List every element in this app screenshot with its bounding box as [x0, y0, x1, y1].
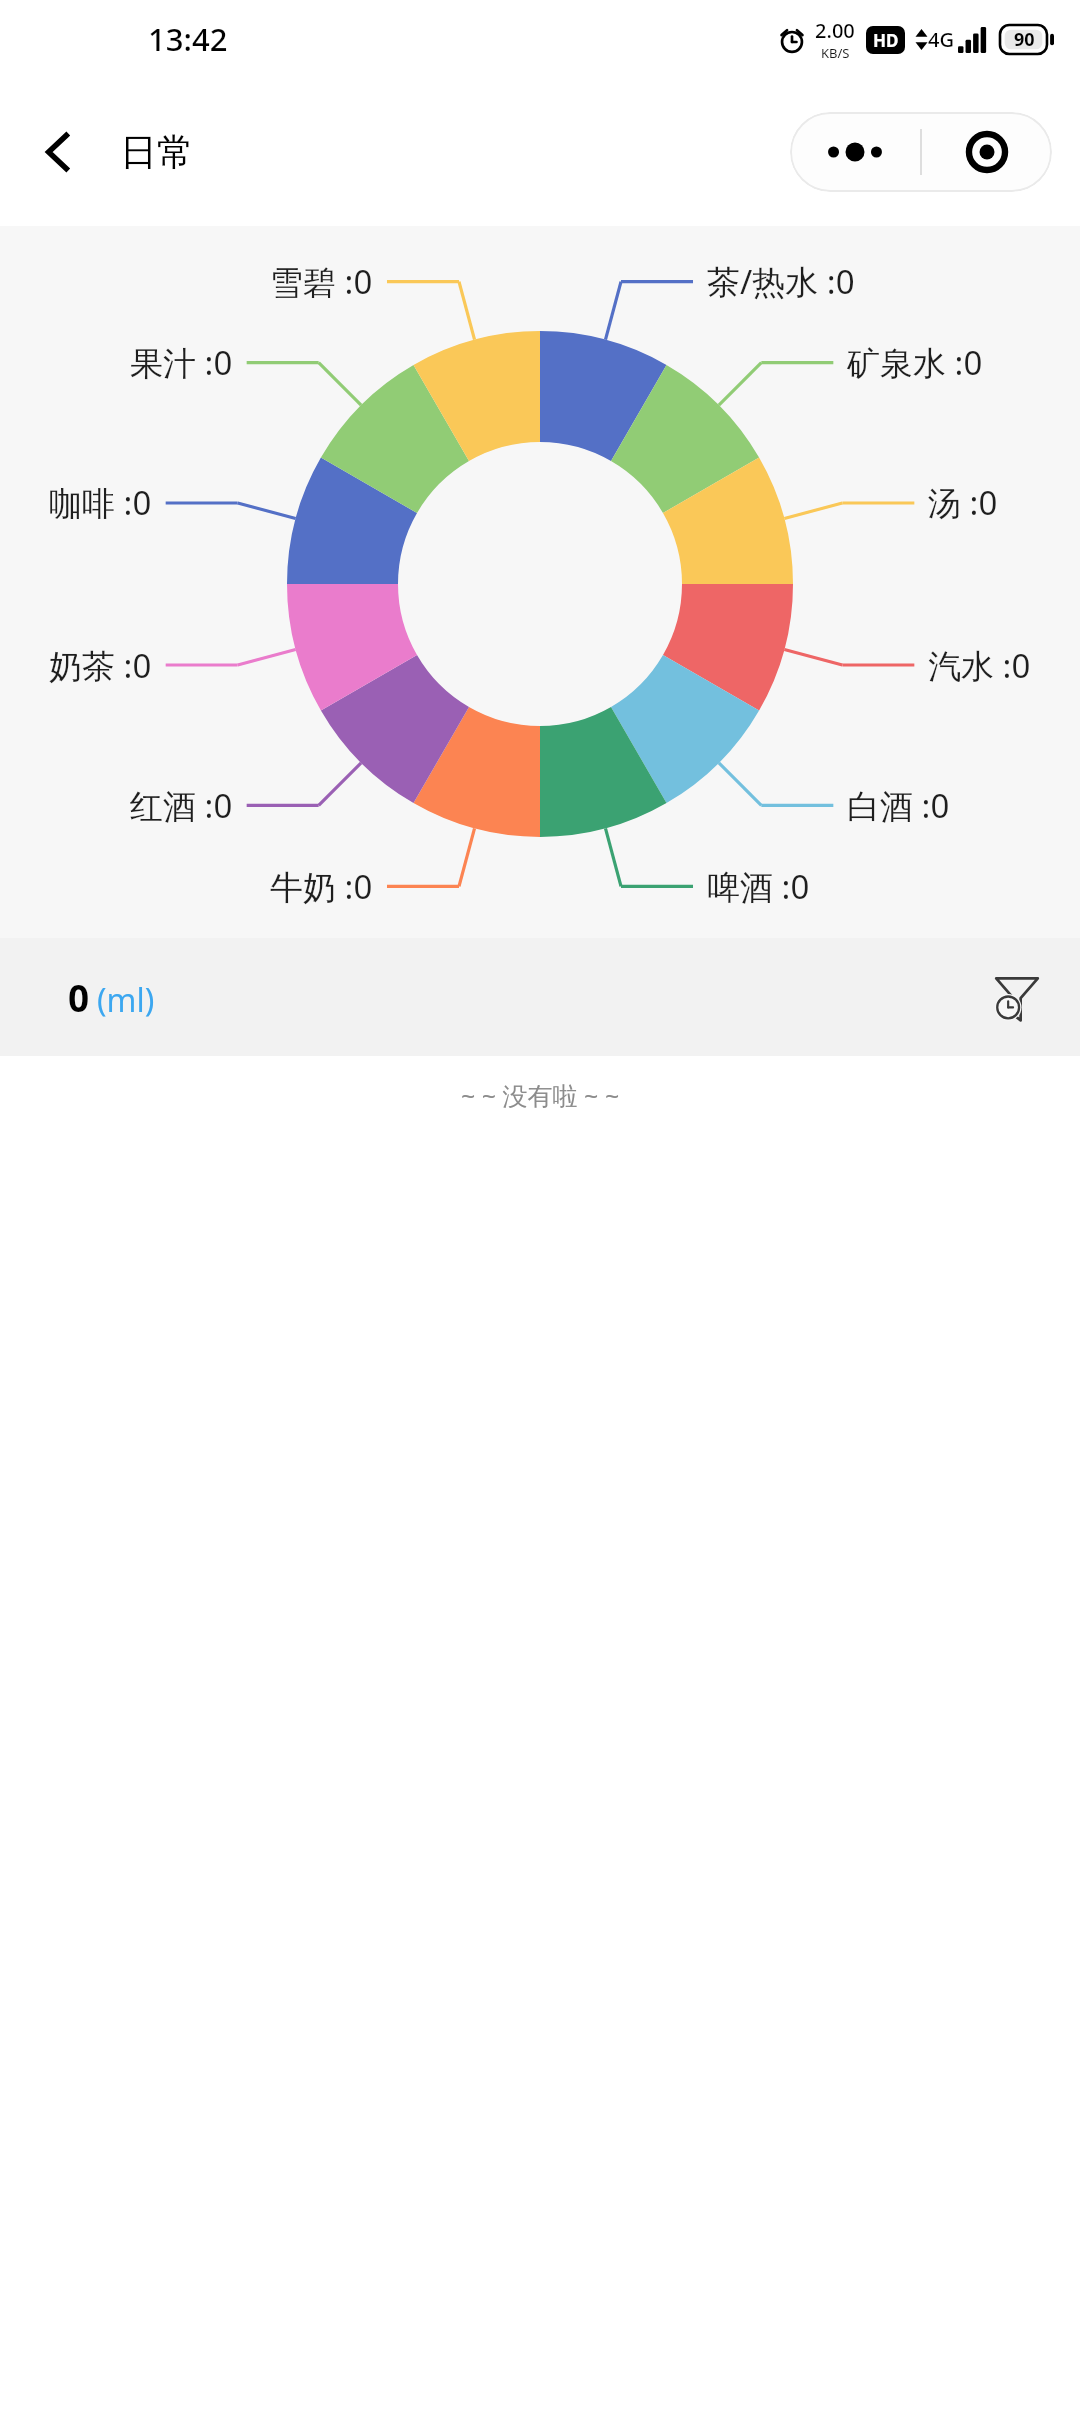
- staticText: 茶/热水 :0: [707, 259, 855, 304]
- staticText: 0: [68, 972, 90, 1022]
- staticText: 2.00: [815, 17, 855, 44]
- staticText: HD: [873, 29, 899, 52]
- staticText: 汽水 :0: [928, 643, 1031, 688]
- button[interactable]: 关闭: [922, 112, 1052, 192]
- staticText: 啤酒 :0: [707, 864, 810, 909]
- staticText: 红酒 :0: [130, 783, 233, 828]
- staticText: 果汁 :0: [130, 340, 233, 385]
- staticText: (ml): [97, 978, 155, 1022]
- button[interactable]: 返回: [20, 114, 96, 190]
- staticText: 90: [1014, 27, 1035, 52]
- button[interactable]: 筛选: [978, 958, 1056, 1036]
- staticText: 矿泉水 :0: [847, 340, 983, 385]
- staticText: 4G: [928, 26, 954, 53]
- staticText: 13:42: [148, 18, 228, 60]
- staticText: ~ ~ 没有啦 ~ ~: [461, 1078, 620, 1112]
- staticText: 汤 :0: [928, 480, 998, 525]
- staticText: 日常: [120, 129, 194, 176]
- button[interactable]: 更多: [790, 112, 920, 192]
- staticText: 牛奶 :0: [270, 864, 373, 909]
- staticText: 奶茶 :0: [49, 643, 152, 688]
- staticText: 雪碧 :0: [270, 259, 373, 304]
- staticText: 白酒 :0: [847, 783, 950, 828]
- staticText: 咖啡 :0: [49, 480, 152, 525]
- button[interactable]: 0: [0, 938, 1080, 1056]
- staticText: KB/S: [821, 44, 850, 62]
